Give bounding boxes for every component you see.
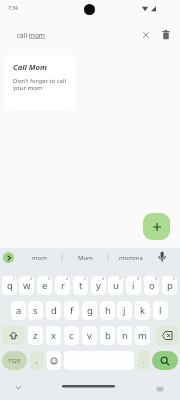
staticText: x xyxy=(51,329,57,342)
staticText: 4 xyxy=(66,276,69,281)
staticText: 8 xyxy=(137,276,140,281)
staticText: call mom xyxy=(17,31,45,40)
staticText: , xyxy=(36,356,38,366)
staticText: . xyxy=(143,356,145,366)
staticText: a xyxy=(16,304,22,317)
staticText: z xyxy=(33,329,38,342)
staticText: p xyxy=(167,279,173,292)
button[interactable]: v xyxy=(82,326,97,345)
button[interactable] xyxy=(3,252,14,263)
staticText: momma xyxy=(119,254,143,262)
staticText: e xyxy=(42,279,48,292)
staticText: j xyxy=(123,304,126,317)
staticText: 2 xyxy=(30,276,33,281)
staticText: u xyxy=(113,279,119,292)
button[interactable]: t xyxy=(73,276,88,295)
button[interactable] xyxy=(152,351,178,370)
staticText: d xyxy=(51,304,57,317)
staticText: n xyxy=(122,329,128,342)
staticText: y xyxy=(96,279,101,292)
staticText: Mom xyxy=(78,254,93,262)
button[interactable]: s xyxy=(28,301,43,320)
button[interactable]: b xyxy=(100,326,115,345)
button[interactable]: a xyxy=(11,301,26,320)
staticText: q xyxy=(7,279,13,292)
staticText: i xyxy=(132,279,135,292)
staticText: f xyxy=(70,304,74,317)
button[interactable]: u xyxy=(108,276,123,295)
button[interactable]: m xyxy=(135,326,150,345)
staticText: v xyxy=(87,329,92,342)
button[interactable] xyxy=(2,326,25,345)
staticText: s xyxy=(33,304,38,317)
staticText: l xyxy=(159,304,162,317)
button[interactable]: w xyxy=(19,276,34,295)
button[interactable]: q xyxy=(2,276,17,295)
staticText: 1 xyxy=(13,276,16,281)
button[interactable]: Call Mom xyxy=(4,55,76,110)
button[interactable]: y xyxy=(91,276,106,295)
button[interactable]: Mom xyxy=(62,249,108,267)
staticText: w xyxy=(23,279,31,292)
button[interactable]: f xyxy=(64,301,79,320)
button[interactable] xyxy=(143,213,170,240)
staticText: 0 xyxy=(173,276,176,281)
button[interactable]: e xyxy=(37,276,52,295)
staticText: m xyxy=(138,329,147,342)
button[interactable]: x xyxy=(46,326,61,345)
button[interactable]: k xyxy=(135,301,150,320)
button[interactable]: momma xyxy=(108,249,154,267)
button[interactable]: g xyxy=(82,301,97,320)
staticText: t xyxy=(79,279,83,292)
button[interactable]: p xyxy=(162,276,177,295)
button[interactable]: ?123 xyxy=(2,351,27,370)
button[interactable]: l xyxy=(153,301,168,320)
staticText: h xyxy=(105,304,111,317)
button[interactable]: i xyxy=(126,276,141,295)
button[interactable]: r xyxy=(55,276,70,295)
staticText: 6 xyxy=(102,276,105,281)
staticText: Call Mom xyxy=(13,62,48,72)
button[interactable] xyxy=(156,326,179,345)
button[interactable]: n xyxy=(117,326,132,345)
button[interactable]: z xyxy=(28,326,43,345)
button[interactable]: . xyxy=(138,351,150,370)
staticText: Don't forget to call your mom xyxy=(13,76,67,92)
staticText: 9 xyxy=(155,276,158,281)
button[interactable]: h xyxy=(100,301,115,320)
staticText: 7:34 xyxy=(8,5,18,12)
button[interactable]: o xyxy=(144,276,159,295)
button[interactable]: mom xyxy=(16,249,62,267)
button[interactable]: c xyxy=(64,326,79,345)
staticText: mom xyxy=(32,254,47,262)
staticText: 5 xyxy=(84,276,87,281)
button[interactable] xyxy=(47,351,61,370)
staticText: c xyxy=(69,329,74,342)
staticText: r xyxy=(61,279,65,292)
staticText: 3 xyxy=(48,276,51,281)
staticText: 7 xyxy=(119,276,122,281)
staticText: o xyxy=(149,279,155,292)
staticText: ?123 xyxy=(8,357,21,365)
button[interactable]: d xyxy=(46,301,61,320)
button[interactable]: j xyxy=(117,301,132,320)
button[interactable]: , xyxy=(30,351,44,370)
staticText: g xyxy=(87,304,93,317)
staticText: k xyxy=(140,304,146,317)
staticText: b xyxy=(105,329,111,342)
